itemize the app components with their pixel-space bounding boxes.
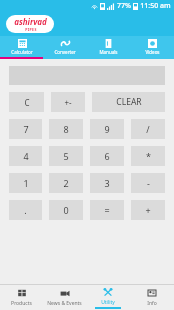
button[interactable]: 2 <box>49 173 83 193</box>
staticText: Utility <box>101 299 115 306</box>
button[interactable]: Products <box>0 285 43 310</box>
button[interactable]: = <box>90 200 124 220</box>
button[interactable]: 7 <box>9 119 42 139</box>
button[interactable]: 4 <box>9 146 42 166</box>
button[interactable]: +- <box>51 92 85 112</box>
staticText: +- <box>64 97 72 108</box>
staticText: 77% <box>117 1 131 11</box>
button[interactable]: 9 <box>90 119 124 139</box>
staticText: + <box>145 204 151 216</box>
button[interactable]: + <box>131 200 165 220</box>
staticText: 4 <box>23 150 29 162</box>
button[interactable]: 3 <box>90 173 124 193</box>
staticText: 7 <box>23 123 29 135</box>
staticText: = <box>104 204 110 216</box>
staticText: 0 <box>63 204 69 216</box>
button[interactable]: . <box>9 200 42 220</box>
staticText: Videos <box>145 49 160 55</box>
button[interactable]: 8 <box>49 119 83 139</box>
staticText: 9 <box>104 123 110 135</box>
button[interactable]: CLEAR <box>92 92 165 112</box>
staticText: Calculator <box>11 49 33 55</box>
staticText: 3 <box>104 177 110 189</box>
staticText: 11:50 am <box>140 1 171 11</box>
button[interactable]: 0 <box>49 200 83 220</box>
button[interactable]: / <box>131 119 165 139</box>
button[interactable]: 6 <box>90 146 124 166</box>
staticText: Converter <box>54 49 76 55</box>
button[interactable]: 1 <box>9 173 42 193</box>
staticText: PIPES <box>25 27 37 32</box>
button[interactable]: - <box>131 173 165 193</box>
staticText: Manuals <box>99 49 118 55</box>
button[interactable]: C <box>9 92 44 112</box>
staticText: Info <box>147 300 157 307</box>
staticText: 8 <box>63 123 69 135</box>
staticText: C <box>24 97 30 108</box>
button[interactable]: Videos <box>130 36 174 57</box>
staticText: ashirvad <box>14 16 47 27</box>
button[interactable]: News & Events <box>43 285 86 310</box>
staticText: News & Events <box>47 300 82 307</box>
button[interactable]: * <box>131 146 165 166</box>
staticText: . <box>24 204 27 216</box>
staticText: 5 <box>63 150 69 162</box>
button[interactable]: 5 <box>49 146 83 166</box>
staticText: / <box>146 123 150 135</box>
staticText: 6 <box>104 150 110 162</box>
staticText: 2 <box>63 177 69 189</box>
button[interactable]: Manuals <box>86 36 130 57</box>
staticText: CLEAR <box>116 96 142 108</box>
staticText: 1 <box>23 177 29 189</box>
button[interactable]: Info <box>130 285 174 310</box>
button[interactable]: Ashirvad Pipes logo <box>6 15 54 33</box>
button[interactable]: Converter <box>43 36 86 57</box>
button[interactable]: Utility <box>86 285 130 310</box>
staticText: Products <box>11 300 32 307</box>
button[interactable]: Calculator <box>0 36 43 57</box>
staticText: * <box>146 150 151 162</box>
staticText: - <box>147 177 150 189</box>
